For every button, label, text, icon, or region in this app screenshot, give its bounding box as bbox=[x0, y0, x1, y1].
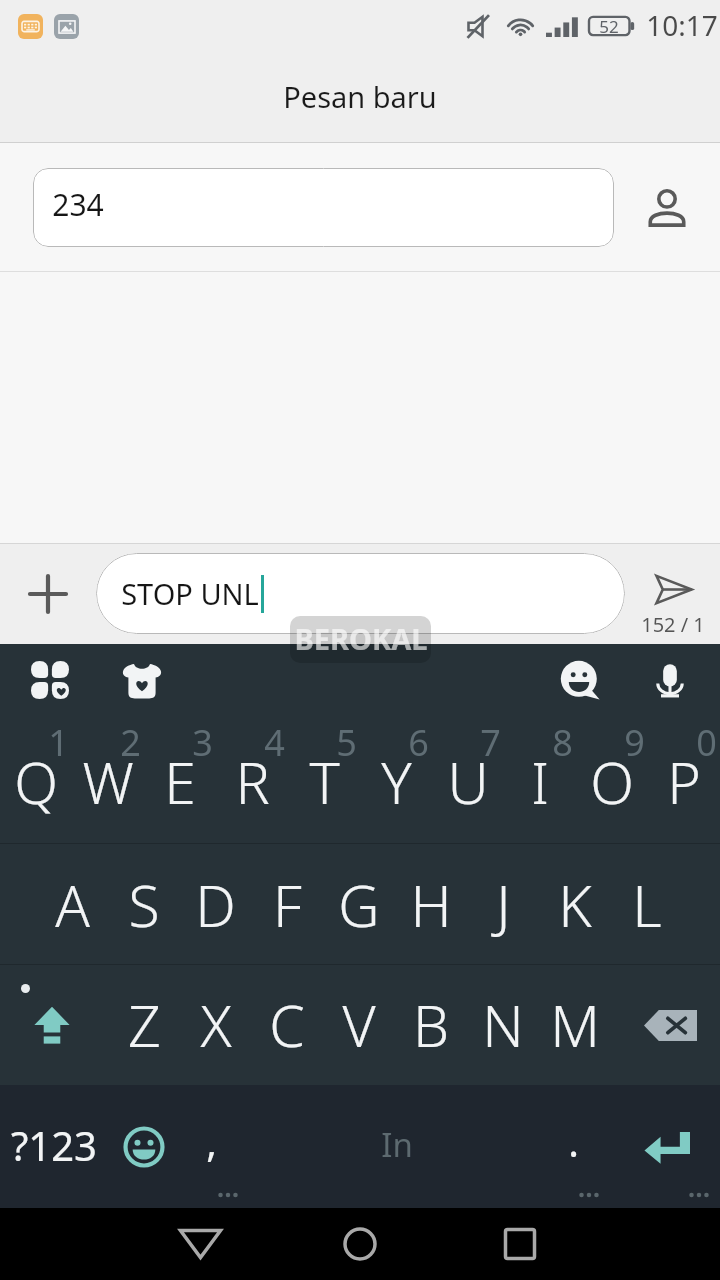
button[interactable]: 3 bbox=[144, 716, 216, 844]
staticText: X bbox=[200, 986, 232, 1064]
button[interactable]: 1 bbox=[0, 716, 72, 844]
button[interactable]: A bbox=[37, 844, 108, 965]
staticText: 234 bbox=[52, 184, 104, 225]
staticText: 6 bbox=[408, 718, 429, 767]
staticText: BEROKAL bbox=[294, 619, 428, 658]
button[interactable]: ?123 bbox=[0, 1085, 107, 1208]
button[interactable]: . bbox=[521, 1085, 613, 1208]
staticText: M bbox=[550, 986, 600, 1064]
staticText: Pesan baru bbox=[283, 77, 437, 116]
button[interactable]: G bbox=[323, 844, 395, 965]
button[interactable]: Shift bbox=[0, 965, 109, 1085]
button[interactable]: C bbox=[251, 965, 323, 1085]
button[interactable]: Emoji bbox=[552, 652, 608, 708]
button[interactable]: Voice input bbox=[642, 652, 698, 708]
staticText: K bbox=[558, 866, 592, 944]
button[interactable]: 0 bbox=[648, 716, 720, 844]
button[interactable]: V bbox=[323, 965, 395, 1085]
staticText: B bbox=[413, 986, 449, 1064]
button[interactable]: S bbox=[108, 844, 179, 965]
staticText: W bbox=[82, 743, 134, 821]
button[interactable]: STOP UNL bbox=[96, 553, 625, 634]
staticText: 9 bbox=[624, 718, 645, 767]
button[interactable]: 8 bbox=[504, 716, 576, 844]
button[interactable]: L bbox=[611, 844, 683, 965]
staticText: T bbox=[309, 743, 340, 821]
button[interactable]: Emoji keyboard bbox=[107, 1085, 181, 1208]
button[interactable]: , bbox=[181, 1085, 273, 1208]
staticText: H bbox=[410, 866, 452, 944]
staticText: L bbox=[632, 866, 662, 944]
staticText: 5 bbox=[336, 718, 357, 767]
staticText: N bbox=[482, 986, 524, 1064]
staticText: 1 bbox=[48, 718, 69, 767]
staticText: . bbox=[568, 1114, 579, 1168]
button[interactable]: Backspace bbox=[611, 965, 720, 1085]
staticText: 4 bbox=[264, 718, 285, 767]
button[interactable]: Themes bbox=[114, 652, 170, 708]
staticText: 8 bbox=[552, 718, 573, 767]
staticText: D bbox=[195, 866, 236, 944]
staticText: 0 bbox=[696, 718, 717, 767]
button[interactable]: F bbox=[251, 844, 323, 965]
button[interactable]: Send message bbox=[625, 543, 720, 644]
button[interactable]: 6 bbox=[360, 716, 432, 844]
button[interactable]: Enter bbox=[613, 1085, 720, 1208]
staticText: Q bbox=[14, 743, 58, 821]
staticText: , bbox=[206, 1114, 217, 1168]
staticText: 52 bbox=[599, 15, 619, 38]
staticText: 3 bbox=[192, 718, 213, 767]
staticText: F bbox=[273, 866, 302, 944]
button[interactable]: X bbox=[180, 965, 251, 1085]
staticText: E bbox=[164, 743, 196, 821]
button[interactable]: 234 bbox=[33, 168, 614, 247]
staticText: 152 / 1 bbox=[641, 611, 705, 638]
staticText: Z bbox=[128, 986, 161, 1064]
button[interactable]: M bbox=[539, 965, 611, 1085]
button[interactable]: K bbox=[539, 844, 611, 965]
button[interactable]: Home bbox=[315, 1208, 405, 1280]
staticText: 10:17 bbox=[646, 6, 718, 44]
button[interactable]: J bbox=[467, 844, 539, 965]
staticText: U bbox=[447, 743, 489, 821]
button[interactable]: 2 bbox=[72, 716, 144, 844]
staticText: Y bbox=[381, 743, 412, 821]
staticText: In bbox=[381, 1122, 413, 1167]
button[interactable]: Recent apps bbox=[475, 1208, 565, 1280]
button[interactable]: In bbox=[273, 1085, 521, 1208]
button[interactable]: 4 bbox=[216, 716, 288, 844]
button[interactable]: Stickers bbox=[22, 652, 78, 708]
staticText: A bbox=[55, 866, 90, 944]
staticText: G bbox=[338, 866, 380, 944]
button[interactable]: H bbox=[395, 844, 467, 965]
staticText: 2 bbox=[120, 718, 141, 767]
staticText: O bbox=[590, 743, 634, 821]
button[interactable]: Z bbox=[109, 965, 180, 1085]
staticText: I bbox=[531, 743, 549, 821]
staticText: STOP UNL bbox=[121, 574, 259, 613]
button[interactable]: N bbox=[467, 965, 539, 1085]
staticText: P bbox=[667, 743, 701, 821]
button[interactable]: 5 bbox=[288, 716, 360, 844]
button[interactable]: Add attachment bbox=[0, 543, 96, 644]
button[interactable]: 7 bbox=[432, 716, 504, 844]
staticText: S bbox=[128, 866, 160, 944]
staticText: V bbox=[342, 986, 376, 1064]
staticText: R bbox=[235, 743, 270, 821]
button[interactable]: Back bbox=[155, 1208, 245, 1280]
button[interactable]: B bbox=[395, 965, 467, 1085]
staticText: 7 bbox=[480, 718, 501, 767]
staticText: ?123 bbox=[11, 1118, 97, 1172]
staticText: J bbox=[496, 866, 511, 944]
staticText: C bbox=[269, 986, 305, 1064]
button[interactable]: 9 bbox=[576, 716, 648, 844]
button[interactable]: D bbox=[179, 844, 251, 965]
button[interactable]: Choose contact bbox=[614, 143, 720, 272]
